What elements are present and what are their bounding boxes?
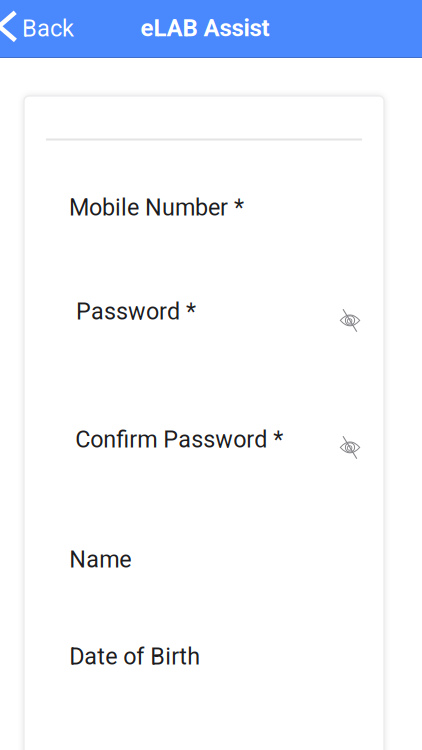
button[interactable]: Confirm Password * bbox=[75, 416, 330, 462]
button[interactable]: Date of Birth bbox=[69, 633, 360, 679]
button[interactable]: Show Confirm Password bbox=[330, 426, 370, 468]
button[interactable]: Mobile Number * bbox=[69, 184, 360, 230]
button[interactable]: Name bbox=[69, 536, 360, 582]
button[interactable]: Password * bbox=[76, 288, 330, 334]
staticText: Password * bbox=[76, 298, 196, 325]
staticText: Mobile Number * bbox=[69, 194, 244, 221]
button[interactable]: Back bbox=[0, 0, 82, 57]
button[interactable]: Show Password bbox=[330, 299, 370, 341]
staticText: Name bbox=[69, 546, 131, 573]
staticText: eLAB Assist bbox=[140, 14, 269, 42]
staticText: Back bbox=[22, 15, 74, 42]
staticText: Date of Birth bbox=[69, 643, 200, 670]
staticText: Confirm Password * bbox=[75, 426, 283, 453]
